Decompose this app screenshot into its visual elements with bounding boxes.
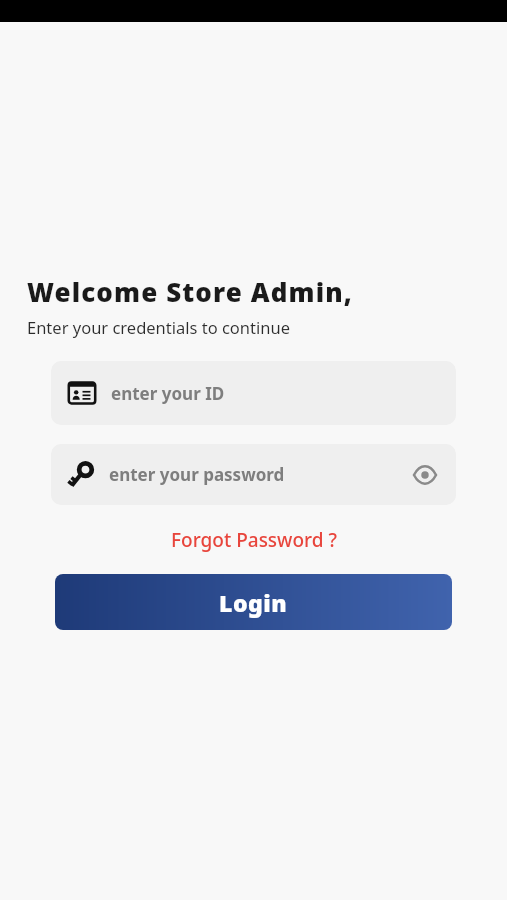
button[interactable]: enter your password <box>51 444 456 505</box>
button[interactable]: enter your ID <box>51 361 456 425</box>
staticText: Login <box>219 587 288 618</box>
button[interactable]: Show password <box>408 458 442 492</box>
staticText: Enter your credentials to continue <box>27 316 290 338</box>
button[interactable]: Login <box>55 574 452 630</box>
staticText: enter your password <box>109 463 285 486</box>
staticText: Welcome Store Admin, <box>27 274 353 309</box>
staticText: enter your ID <box>111 382 225 405</box>
button[interactable]: Forgot Password ? <box>163 523 345 557</box>
